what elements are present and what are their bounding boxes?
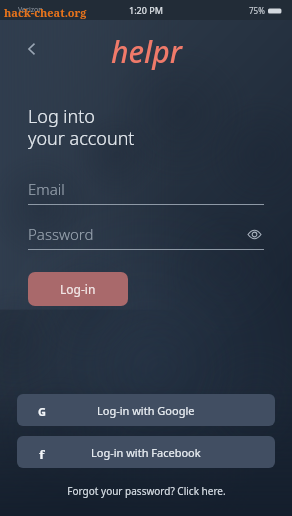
- button[interactable]: f: [17, 436, 275, 468]
- button[interactable]: Back: [16, 33, 48, 65]
- staticText: 75%: [249, 5, 265, 16]
- button[interactable]: Show password: [244, 224, 264, 244]
- staticText: helpr: [111, 31, 182, 72]
- staticText: G: [38, 404, 46, 417]
- staticText: hack-cheat.org: [4, 5, 87, 20]
- staticText: Password: [28, 224, 94, 244]
- button[interactable]: Log-in: [28, 272, 128, 306]
- staticText: Email: [28, 179, 65, 199]
- staticText: Log into your account: [28, 104, 135, 151]
- button[interactable]: Password: [28, 222, 264, 250]
- button[interactable]: Forgot your password? Click here.: [0, 482, 292, 500]
- staticText: Verizon: [18, 5, 43, 15]
- button[interactable]: Email: [28, 177, 264, 205]
- staticText: Log-in: [60, 281, 96, 297]
- staticText: 1:20 PM: [129, 4, 163, 16]
- staticText: Log-in with Facebook: [91, 445, 201, 460]
- staticText: Forgot your password? Click here.: [67, 484, 226, 498]
- button[interactable]: G: [17, 394, 275, 426]
- staticText: Log-in with Google: [97, 403, 195, 418]
- staticText: f: [39, 446, 45, 459]
